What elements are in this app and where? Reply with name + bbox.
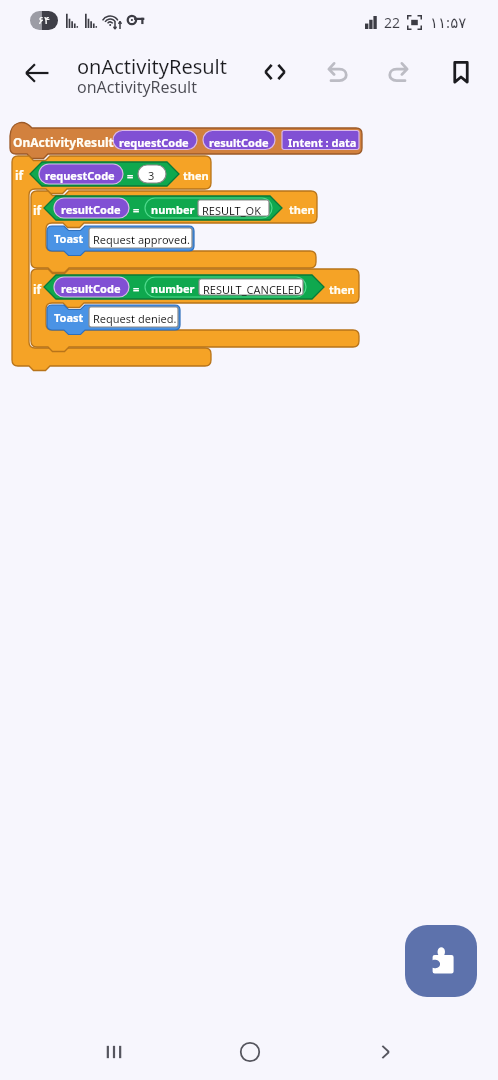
staticText: number bbox=[151, 281, 195, 296]
staticText: Request approved. bbox=[93, 232, 190, 247]
staticText: onActivityResult bbox=[77, 76, 198, 98]
staticText: RESULT_CANCELED bbox=[203, 282, 302, 297]
button[interactable]: Home bbox=[222, 1024, 277, 1079]
staticText: resultCode bbox=[209, 135, 269, 150]
staticText: if bbox=[33, 202, 42, 218]
staticText: resultCode bbox=[61, 281, 121, 296]
staticText: Intent : data bbox=[288, 135, 357, 150]
staticText: onActivityResult bbox=[77, 53, 227, 80]
staticText: if bbox=[33, 281, 42, 297]
staticText: Toast bbox=[54, 231, 84, 246]
staticText: 3 bbox=[148, 168, 155, 183]
staticText: then bbox=[183, 168, 209, 183]
button[interactable]: Back bbox=[357, 1024, 412, 1079]
staticText: Request denied. bbox=[93, 311, 177, 326]
staticText: ۱۱:۵۷ bbox=[430, 12, 467, 32]
staticText: resultCode bbox=[61, 202, 121, 217]
button[interactable]: Bookmark bbox=[439, 50, 483, 94]
staticText: then bbox=[329, 282, 355, 297]
button[interactable]: Redo bbox=[377, 50, 421, 94]
button[interactable]: Undo bbox=[315, 50, 359, 94]
staticText: requestCode bbox=[45, 168, 115, 183]
staticText: Toast bbox=[54, 310, 84, 325]
staticText: if bbox=[15, 167, 24, 183]
staticText: = bbox=[133, 281, 140, 296]
staticText: number bbox=[151, 202, 195, 217]
staticText: = bbox=[127, 168, 134, 183]
staticText: RESULT_OK bbox=[202, 203, 261, 218]
staticText: OnActivityResult bbox=[13, 134, 114, 150]
button[interactable]: Back bbox=[14, 50, 59, 95]
staticText: 22 bbox=[384, 13, 401, 32]
staticText: ۶۴ bbox=[38, 14, 50, 27]
button[interactable]: Code view bbox=[253, 50, 297, 94]
staticText: requestCode bbox=[119, 135, 189, 150]
button[interactable]: Add block bbox=[405, 925, 477, 997]
staticText: then bbox=[289, 202, 315, 217]
button[interactable]: Recent apps bbox=[86, 1024, 141, 1079]
staticText: = bbox=[133, 202, 140, 217]
